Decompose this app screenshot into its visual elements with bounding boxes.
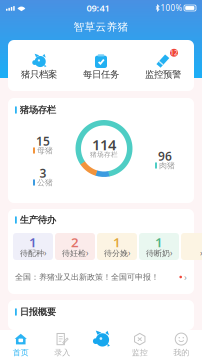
staticText: 2: [71, 233, 79, 251]
staticText: 猪只档案: [21, 69, 57, 80]
staticText: 猪场存栏: [90, 150, 118, 159]
staticText: 监控: [132, 348, 148, 357]
staticText: 1: [113, 233, 121, 251]
staticText: 日报概要: [20, 306, 56, 318]
staticText: 待分娩›: [104, 248, 130, 258]
button[interactable]: 1: [139, 233, 179, 260]
staticText: 待断奶›: [146, 248, 172, 258]
staticText: 录入: [54, 348, 70, 357]
button[interactable]: 监控: [119, 331, 160, 359]
button[interactable]: [181, 233, 202, 260]
staticText: 我的: [173, 348, 189, 357]
staticText: 96: [158, 148, 172, 164]
button[interactable]: 12: [132, 40, 194, 90]
staticText: 114: [92, 135, 116, 154]
button[interactable]: 我的: [160, 331, 202, 359]
staticText: 猪场存栏: [20, 104, 56, 116]
button[interactable]: 1: [97, 233, 137, 260]
staticText: ›: [200, 248, 202, 258]
button[interactable]: 录入: [41, 331, 83, 359]
button[interactable]: 记录: [86, 324, 116, 354]
staticText: 1: [29, 233, 37, 251]
staticText: 09:41: [86, 2, 109, 14]
staticText: 智草云养猪: [73, 20, 128, 33]
staticText: 15: [36, 133, 50, 149]
staticText: 首页: [13, 348, 29, 357]
staticText: 公猪: [37, 178, 53, 187]
staticText: 1: [155, 233, 163, 251]
staticText: 全国：养猪业又出新政策！全国可申报！: [15, 272, 159, 282]
staticText: ›: [184, 271, 187, 283]
staticText: 生产待办: [20, 214, 56, 226]
staticText: 100%: [160, 3, 182, 13]
staticText: 母猪: [37, 146, 53, 155]
button[interactable]: 猪只档案: [8, 40, 70, 90]
staticText: 3: [39, 165, 46, 181]
staticText: 12: [170, 48, 178, 57]
button[interactable]: 1: [13, 233, 53, 260]
staticText: 每日任务: [83, 69, 119, 80]
button[interactable]: 每日任务: [70, 40, 132, 90]
staticText: 待妊检›: [62, 248, 88, 258]
button[interactable]: 首页: [0, 331, 41, 359]
staticText: 肉猪: [159, 161, 175, 170]
button[interactable]: 2: [55, 233, 95, 260]
staticText: 待配种›: [20, 248, 46, 258]
staticText: 监控预警: [145, 69, 181, 80]
